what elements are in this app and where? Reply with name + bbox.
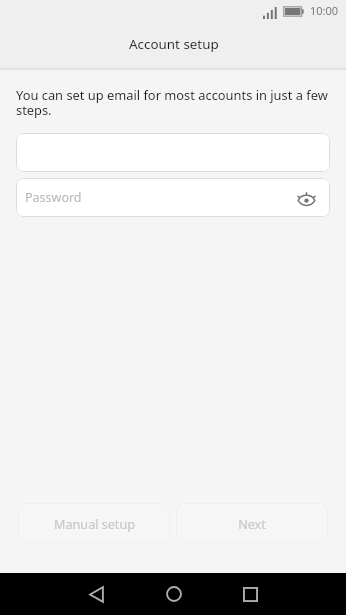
staticText: Password <box>25 189 82 206</box>
button[interactable]: Back <box>75 573 118 615</box>
staticText: You can set up email for most accounts i… <box>16 86 332 119</box>
button[interactable]: Password <box>16 178 330 217</box>
staticText: Manual setup <box>54 516 135 533</box>
staticText: 10:00 <box>310 3 339 18</box>
button[interactable]: Recent apps <box>229 573 272 615</box>
staticText: Next <box>238 516 266 533</box>
button[interactable]: Next <box>176 503 328 543</box>
button[interactable]: Email address <box>16 133 330 172</box>
button[interactable]: Home <box>152 573 195 615</box>
button[interactable]: Manual setup <box>18 503 170 543</box>
staticText: Account setup <box>129 35 219 53</box>
button[interactable]: Show password <box>291 183 321 213</box>
